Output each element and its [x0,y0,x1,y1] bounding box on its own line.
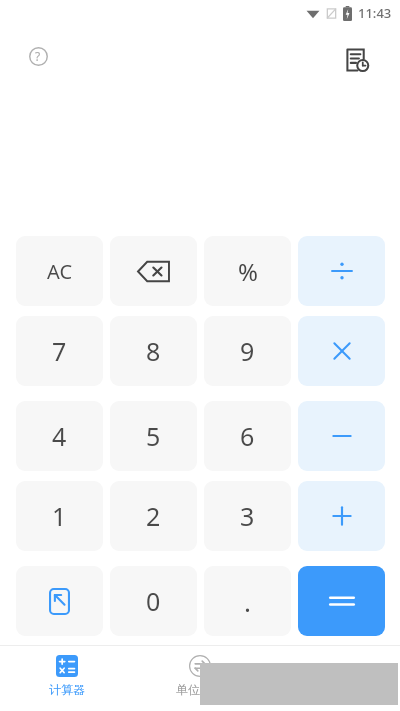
staticText: . [244,584,251,619]
staticText: ? [35,48,41,64]
button[interactable] [298,316,385,386]
staticText: 1 [52,499,67,533]
button[interactable]: 单位换算 [133,646,266,697]
button[interactable]: 7 [16,316,103,386]
staticText: 6 [240,419,255,453]
staticText: % [238,255,258,288]
button[interactable]: History [337,40,377,80]
button[interactable]: Expand [16,566,103,636]
button[interactable]: 1 [16,481,103,551]
button[interactable] [298,566,385,636]
staticText: 8 [146,334,161,368]
button[interactable]: 4 [16,401,103,471]
button[interactable]: 9 [204,316,291,386]
button[interactable]: % [204,236,291,306]
staticText: 4 [52,419,67,453]
button[interactable]: 0 [110,566,197,636]
button[interactable]: 计算器 [0,646,133,697]
button[interactable] [298,481,385,551]
button[interactable] [298,401,385,471]
button[interactable]: Delete [110,236,197,306]
button[interactable]: 3 [204,481,291,551]
staticText: 7 [52,334,67,368]
button[interactable] [298,236,385,306]
button[interactable]: . [204,566,291,636]
staticText: 9 [240,334,255,368]
staticText: 0 [146,584,161,618]
button[interactable]: AC [16,236,103,306]
button[interactable]: 2 [110,481,197,551]
button[interactable]: 8 [110,316,197,386]
staticText: 5 [146,419,161,453]
button[interactable]: Help [22,40,54,72]
staticText: 计算器 [49,682,85,697]
button[interactable]: 6 [204,401,291,471]
button[interactable]: 5 [110,401,197,471]
staticText: AC [47,258,73,285]
staticText: 3 [240,499,255,533]
staticText: 单位换算 [176,682,224,697]
staticText: 2 [146,499,161,533]
staticText: 11:43 [358,4,392,22]
